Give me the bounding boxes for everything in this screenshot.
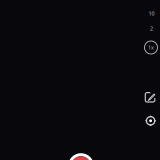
button[interactable]: Zoom 1x — [141, 37, 160, 57]
staticText: 2 — [150, 25, 153, 32]
staticText: 1x — [148, 44, 154, 51]
button[interactable]: Record — [66, 151, 96, 160]
button[interactable]: Compose — [140, 87, 160, 107]
button[interactable]: 2 — [142, 22, 160, 34]
staticText: 10 — [148, 10, 154, 17]
button[interactable]: Focus — [141, 111, 160, 131]
button[interactable]: 10 — [142, 7, 160, 19]
